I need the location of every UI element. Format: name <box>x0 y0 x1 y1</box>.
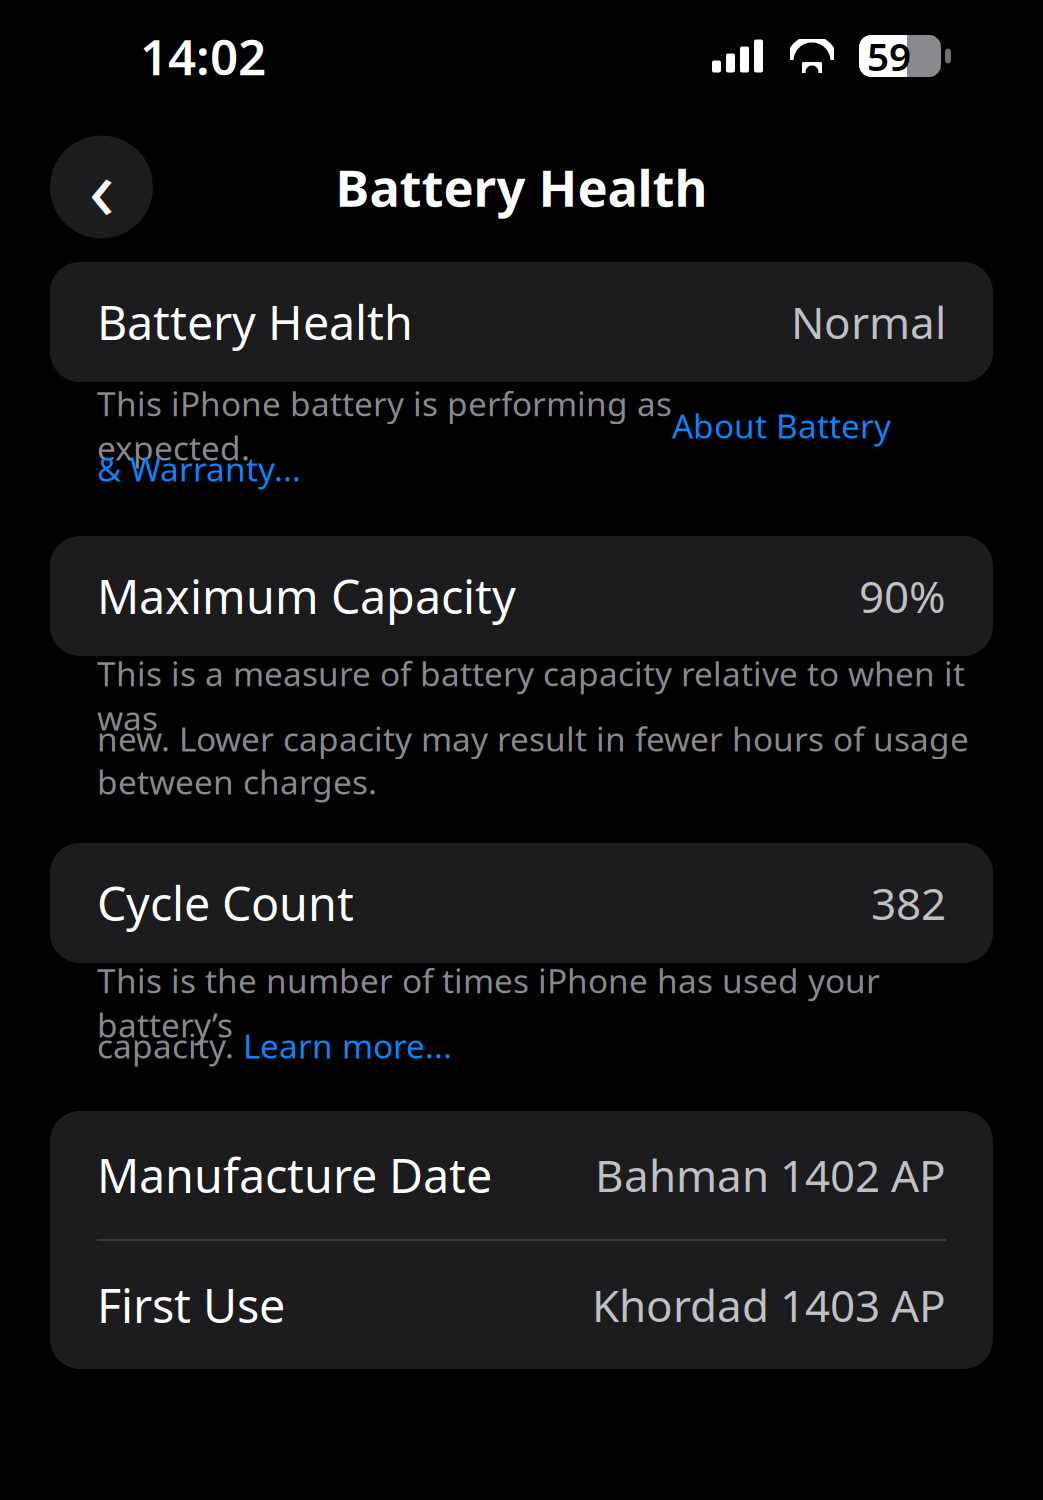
staticText: Manufacture Date <box>97 1144 492 1206</box>
staticText: This is a measure of battery capacity re… <box>97 651 965 740</box>
button[interactable]: Manufacture Date <box>50 1111 993 1239</box>
staticText: 90% <box>859 567 946 625</box>
staticText: Cycle Count <box>97 872 354 934</box>
staticText: Battery Health <box>335 153 707 221</box>
staticText: Battery Health <box>97 291 413 353</box>
staticText: 14:02 <box>140 23 266 89</box>
staticText: Bahman 1402 AP <box>595 1146 946 1204</box>
staticText: This is the number of times iPhone has u… <box>97 958 880 1047</box>
button[interactable]: Back <box>50 135 153 238</box>
staticText: new. Lower capacity may result in fewer … <box>97 716 969 761</box>
button[interactable]: Maximum Capacity <box>50 536 993 656</box>
button[interactable]: & Warranty... <box>97 446 301 491</box>
staticText: Khordad 1403 AP <box>592 1276 946 1334</box>
staticText: 59 <box>867 30 911 82</box>
button[interactable]: Battery Health <box>50 262 993 382</box>
staticText: First Use <box>97 1274 285 1336</box>
button[interactable]: About Battery <box>672 403 891 448</box>
staticText: This iPhone battery is performing as exp… <box>97 381 672 470</box>
staticText: Learn more... <box>243 1023 452 1068</box>
staticText: Normal <box>791 293 946 351</box>
staticText: & Warranty... <box>97 446 301 491</box>
staticText: Maximum Capacity <box>97 565 516 627</box>
staticText: ‹ <box>88 130 114 244</box>
staticText: About Battery <box>672 403 891 448</box>
button[interactable]: First Use <box>50 1241 993 1369</box>
staticText: capacity. <box>97 1023 243 1068</box>
button[interactable]: Learn more... <box>243 1023 452 1068</box>
button[interactable]: Cycle Count <box>50 843 993 963</box>
staticText: 382 <box>871 874 946 932</box>
staticText: between charges. <box>97 759 377 804</box>
